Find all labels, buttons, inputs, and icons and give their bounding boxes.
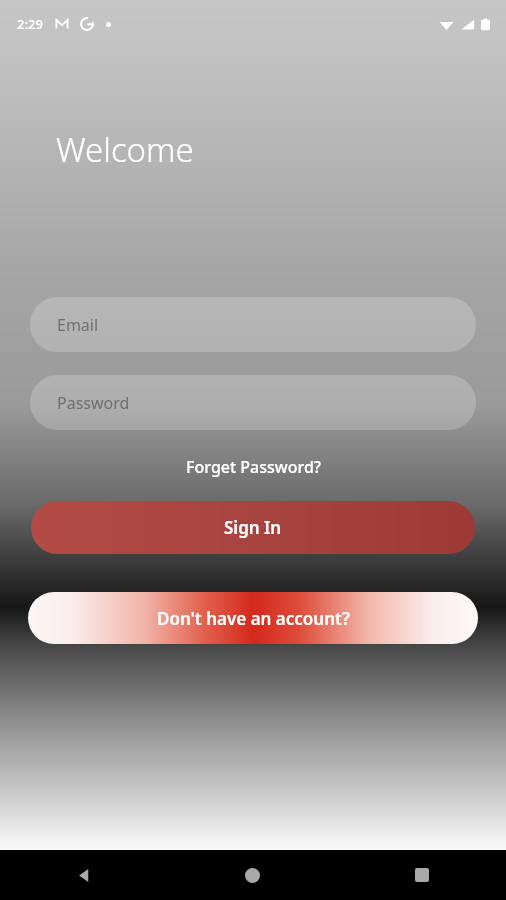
- button[interactable]: Forget Password?: [0, 450, 506, 484]
- button[interactable]: Email: [30, 297, 476, 352]
- staticText: Email: [57, 314, 99, 336]
- button[interactable]: Home: [168, 850, 337, 900]
- button[interactable]: Recent apps: [337, 850, 506, 900]
- button[interactable]: Password: [30, 375, 476, 430]
- button[interactable]: Don't have an account?: [28, 592, 478, 644]
- button[interactable]: Sign In: [31, 501, 475, 554]
- staticText: Welcome: [56, 127, 194, 172]
- staticText: Password: [57, 392, 130, 414]
- staticText: Forget Password?: [186, 456, 321, 478]
- staticText: Sign In: [224, 516, 282, 539]
- staticText: Don't have an account?: [157, 607, 350, 630]
- staticText: 2:29: [17, 15, 43, 33]
- button[interactable]: Back: [0, 850, 168, 900]
